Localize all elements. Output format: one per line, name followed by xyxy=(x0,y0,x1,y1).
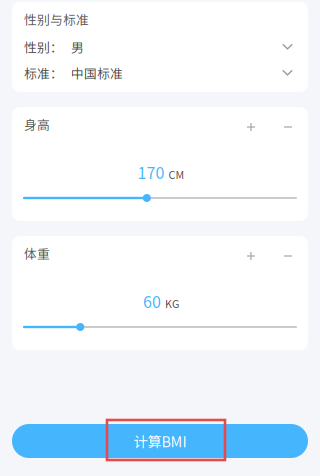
staticText: 计算BMI xyxy=(133,431,186,451)
staticText: 性别与标准 xyxy=(24,10,89,28)
staticText: 性别： xyxy=(24,38,63,56)
button[interactable]: 计算BMI xyxy=(12,424,308,458)
staticText: CM xyxy=(168,167,184,182)
staticText: 170 xyxy=(137,160,164,184)
button[interactable]: Decrease 体重 xyxy=(273,244,303,268)
button[interactable]: Increase 体重 xyxy=(236,244,266,268)
staticText: 体重 xyxy=(24,244,50,262)
staticText: 男 xyxy=(71,38,84,56)
staticText: KG xyxy=(165,296,179,311)
staticText: 身高 xyxy=(24,115,50,133)
staticText: 中国标准 xyxy=(71,64,123,82)
button[interactable]: 性别： xyxy=(24,37,305,57)
button[interactable]: Increase 身高 xyxy=(236,115,266,139)
button[interactable]: Decrease 身高 xyxy=(273,115,303,139)
staticText: 60 xyxy=(143,289,161,313)
staticText: 标准： xyxy=(24,64,63,82)
button[interactable]: 标准： xyxy=(24,63,305,83)
